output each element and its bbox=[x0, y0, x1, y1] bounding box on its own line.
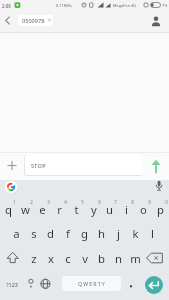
button[interactable] bbox=[4, 158, 20, 174]
button[interactable]: k bbox=[127, 224, 144, 242]
staticText: m bbox=[130, 251, 141, 266]
staticText: 0500978 bbox=[22, 17, 45, 25]
staticText: 0 bbox=[165, 199, 168, 205]
staticText: 7 bbox=[114, 199, 117, 205]
staticText: 4 bbox=[64, 199, 67, 205]
button[interactable]: 0 bbox=[162, 198, 169, 205]
button[interactable] bbox=[145, 276, 163, 294]
button[interactable] bbox=[146, 156, 166, 176]
staticText: j bbox=[117, 226, 120, 241]
staticText: 3 bbox=[47, 199, 50, 205]
staticText: 0.11KB/s bbox=[56, 3, 72, 8]
staticText: 2:08 bbox=[2, 3, 11, 9]
button[interactable]: u bbox=[101, 200, 118, 218]
staticText: ?123 bbox=[6, 281, 18, 288]
staticText: g bbox=[81, 226, 88, 241]
button[interactable]: h bbox=[93, 224, 110, 242]
button[interactable]: s bbox=[25, 224, 42, 242]
staticText: v bbox=[82, 251, 88, 266]
staticText: n bbox=[115, 251, 122, 266]
button[interactable]: c bbox=[59, 249, 76, 267]
button[interactable] bbox=[2, 249, 24, 267]
button[interactable]: 0500978 bbox=[18, 15, 53, 26]
staticText: 2 bbox=[30, 199, 33, 205]
button[interactable]: 4 bbox=[61, 198, 69, 205]
button[interactable]: v bbox=[76, 249, 93, 267]
button[interactable]: 2 bbox=[27, 198, 35, 205]
button[interactable]: t bbox=[68, 200, 85, 218]
staticText: y bbox=[91, 202, 97, 217]
staticText: b bbox=[98, 251, 105, 266]
button[interactable]: 3 bbox=[44, 198, 52, 205]
button[interactable]: 7 bbox=[111, 198, 119, 205]
button[interactable]: QWERTY bbox=[62, 276, 121, 291]
staticText: 9 bbox=[148, 199, 151, 205]
staticText: QWERTY bbox=[78, 280, 106, 287]
button[interactable] bbox=[151, 179, 167, 195]
button[interactable]: m bbox=[127, 249, 144, 267]
staticText: t bbox=[74, 202, 79, 217]
button[interactable]: p bbox=[152, 200, 169, 218]
staticText: r bbox=[57, 202, 62, 217]
staticText: q bbox=[5, 202, 12, 217]
button[interactable]: i bbox=[118, 200, 135, 218]
button[interactable]: w bbox=[17, 200, 34, 218]
staticText: d bbox=[47, 226, 54, 241]
button[interactable] bbox=[144, 249, 167, 267]
button[interactable]: 1 bbox=[10, 198, 18, 205]
staticText: 5 bbox=[81, 199, 84, 205]
staticText: 1 bbox=[13, 199, 16, 205]
button[interactable] bbox=[24, 275, 39, 292]
button[interactable]: a bbox=[8, 224, 25, 242]
staticText: 8 bbox=[131, 199, 134, 205]
button[interactable]: n bbox=[110, 249, 127, 267]
staticText: z bbox=[31, 251, 37, 266]
staticText: p bbox=[157, 202, 164, 217]
button[interactable]: 6 bbox=[95, 198, 103, 205]
staticText: MegaFon 4G bbox=[113, 3, 137, 8]
staticText: 7% bbox=[162, 3, 168, 8]
button[interactable]: ?123 bbox=[3, 276, 20, 292]
button[interactable]: 9 bbox=[145, 198, 153, 205]
button[interactable]: q bbox=[0, 200, 17, 218]
staticText: 6 bbox=[98, 199, 101, 205]
button[interactable]: j bbox=[110, 224, 127, 242]
button[interactable]: g bbox=[76, 224, 93, 242]
staticText: e bbox=[39, 202, 46, 217]
button[interactable]: z bbox=[25, 249, 42, 267]
button[interactable]: 5 bbox=[78, 198, 86, 205]
staticText: s bbox=[31, 226, 37, 241]
staticText: f bbox=[66, 226, 70, 241]
button[interactable] bbox=[40, 275, 55, 292]
button[interactable]: f bbox=[59, 224, 76, 242]
staticText: l bbox=[151, 226, 154, 241]
staticText: k bbox=[132, 226, 139, 241]
button[interactable]: STOP bbox=[25, 155, 143, 175]
staticText: i bbox=[125, 202, 128, 217]
button[interactable]: x bbox=[42, 249, 59, 267]
button[interactable]: l bbox=[144, 224, 161, 242]
staticText: u bbox=[106, 202, 113, 217]
staticText: x bbox=[48, 251, 54, 266]
button[interactable] bbox=[2, 14, 14, 28]
button[interactable]: b bbox=[93, 249, 110, 267]
staticText: STOP bbox=[31, 162, 46, 169]
button[interactable]: r bbox=[51, 200, 68, 218]
staticText: o bbox=[140, 202, 147, 217]
button[interactable]: d bbox=[42, 224, 59, 242]
staticText: w bbox=[21, 202, 30, 217]
button[interactable] bbox=[148, 13, 164, 29]
button[interactable]: o bbox=[135, 200, 152, 218]
staticText: a bbox=[13, 226, 20, 241]
button[interactable]: e bbox=[34, 200, 51, 218]
button[interactable]: 8 bbox=[128, 198, 136, 205]
button[interactable] bbox=[3, 179, 19, 195]
button[interactable]: y bbox=[85, 200, 102, 218]
staticText: h bbox=[98, 226, 105, 241]
staticText: c bbox=[65, 251, 71, 266]
